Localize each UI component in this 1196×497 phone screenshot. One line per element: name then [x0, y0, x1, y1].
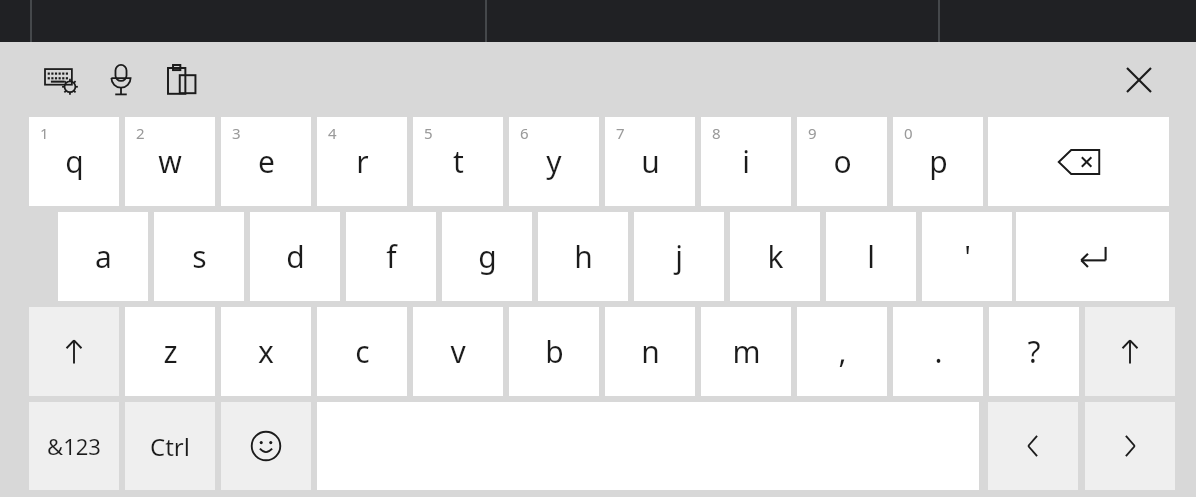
staticText: &123 — [47, 431, 101, 461]
button[interactable]: 6 — [509, 117, 599, 206]
button[interactable]: Shift — [29, 307, 119, 396]
staticText: q — [65, 141, 84, 182]
staticText: j — [675, 236, 683, 277]
button[interactable]: c — [317, 307, 407, 396]
staticText: d — [286, 236, 305, 277]
button[interactable]: Clipboard — [160, 60, 204, 100]
staticText: 2 — [136, 123, 145, 143]
button[interactable]: z — [125, 307, 215, 396]
staticText: u — [641, 141, 660, 182]
staticText: e — [258, 141, 275, 182]
staticText: v — [450, 331, 466, 372]
staticText: x — [258, 331, 274, 372]
staticText: 7 — [616, 123, 625, 143]
button[interactable]: a — [58, 212, 148, 301]
button[interactable]: l — [826, 212, 916, 301]
staticText: ' — [964, 236, 971, 277]
button[interactable]: f — [346, 212, 436, 301]
button[interactable]: Voice input — [100, 60, 142, 100]
button[interactable]: ' — [922, 212, 1012, 301]
button[interactable]: Close keyboard — [1116, 58, 1162, 102]
staticText: , — [838, 331, 847, 372]
staticText: y — [546, 141, 562, 182]
button[interactable]: 0 — [893, 117, 983, 206]
staticText: 1 — [40, 123, 49, 143]
button[interactable]: v — [413, 307, 503, 396]
button[interactable]: Emoji — [221, 402, 311, 490]
button[interactable]: g — [442, 212, 532, 301]
staticText: c — [355, 331, 370, 372]
staticText: p — [929, 141, 948, 182]
staticText: 8 — [712, 123, 721, 143]
button[interactable]: Enter — [1016, 212, 1169, 301]
staticText: b — [545, 331, 564, 372]
button[interactable]: 9 — [797, 117, 887, 206]
button[interactable]: Backspace — [988, 117, 1169, 206]
button[interactable]: j — [634, 212, 724, 301]
button[interactable]: 7 — [605, 117, 695, 206]
staticText: h — [574, 236, 593, 277]
button[interactable]: m — [701, 307, 791, 396]
staticText: z — [163, 331, 178, 372]
button[interactable]: d — [250, 212, 340, 301]
button[interactable]: Cursor right — [1085, 402, 1175, 490]
button[interactable]: Keyboard settings — [38, 60, 84, 100]
staticText: 9 — [808, 123, 817, 143]
staticText: f — [386, 236, 397, 277]
staticText: a — [95, 236, 112, 277]
button[interactable]: s — [154, 212, 244, 301]
button[interactable]: , — [797, 307, 887, 396]
button[interactable]: b — [509, 307, 599, 396]
staticText: . — [934, 331, 943, 372]
button[interactable]: 8 — [701, 117, 791, 206]
button[interactable]: 1 — [29, 117, 119, 206]
staticText: k — [767, 236, 784, 277]
button[interactable]: Shift — [1085, 307, 1175, 396]
button[interactable]: n — [605, 307, 695, 396]
staticText: g — [478, 236, 497, 277]
button[interactable]: x — [221, 307, 311, 396]
button[interactable]: 2 — [125, 117, 215, 206]
staticText: l — [867, 236, 875, 277]
staticText: t — [453, 141, 464, 182]
staticText: r — [356, 141, 369, 182]
staticText: 4 — [328, 123, 337, 143]
staticText: w — [158, 141, 182, 182]
button[interactable]: h — [538, 212, 628, 301]
staticText: m — [732, 331, 761, 372]
button[interactable]: Cursor left — [988, 402, 1078, 490]
staticText: i — [742, 141, 750, 182]
staticText: Ctrl — [150, 430, 190, 463]
button[interactable]: &123 — [29, 402, 119, 490]
staticText: ? — [1027, 331, 1041, 372]
staticText: n — [641, 331, 660, 372]
button[interactable]: k — [730, 212, 820, 301]
button[interactable]: Ctrl — [125, 402, 215, 490]
button[interactable]: . — [893, 307, 983, 396]
button[interactable]: 4 — [317, 117, 407, 206]
staticText: s — [192, 236, 207, 277]
staticText: 3 — [232, 123, 241, 143]
staticText: o — [833, 141, 852, 182]
staticText: 5 — [424, 123, 433, 143]
button[interactable]: 5 — [413, 117, 503, 206]
button[interactable]: 3 — [221, 117, 311, 206]
staticText: 0 — [904, 123, 913, 143]
button[interactable]: ? — [989, 307, 1079, 396]
staticText: 6 — [520, 123, 529, 143]
